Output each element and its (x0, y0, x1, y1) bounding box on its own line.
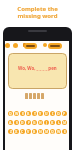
button[interactable]: Stars (43, 43, 47, 47)
staticText: H (39, 120, 42, 125)
button[interactable]: B (32, 129, 37, 134)
button[interactable]: I (50, 111, 55, 116)
button[interactable]: G (32, 120, 37, 125)
staticText: Z (10, 129, 12, 134)
button[interactable]: Q (8, 111, 13, 116)
button[interactable]: K (50, 120, 55, 125)
staticText: I (52, 111, 54, 116)
button[interactable]: Q (50, 129, 55, 134)
staticText: U (45, 111, 48, 116)
staticText: W (15, 111, 19, 116)
staticText: E (22, 111, 24, 116)
button[interactable]: D (20, 120, 25, 125)
button[interactable] (33, 93, 36, 99)
button[interactable]: M (62, 120, 67, 125)
button[interactable]: X (14, 129, 19, 134)
button[interactable]: C (20, 129, 25, 134)
button[interactable]: Back (5, 43, 10, 48)
staticText: K (51, 120, 54, 125)
button[interactable]: A (8, 120, 13, 125)
button[interactable] (41, 93, 44, 99)
button[interactable]: P (62, 111, 67, 116)
staticText: C (21, 129, 24, 134)
button[interactable]: N (38, 129, 43, 134)
button[interactable] (37, 93, 40, 99)
button[interactable]: E (62, 129, 67, 134)
staticText: E (64, 129, 66, 134)
button[interactable]: J (44, 120, 49, 125)
staticText: R (27, 111, 30, 116)
staticText: Wo, Wo, _ _ _ _ pen (18, 65, 57, 71)
staticText: G (33, 120, 36, 125)
staticText: O (57, 111, 60, 116)
staticText: V (27, 129, 30, 134)
staticText: M (45, 129, 49, 134)
button[interactable] (29, 93, 32, 99)
button[interactable]: R (26, 111, 31, 116)
staticText: Q (51, 129, 54, 134)
staticText: Complete the missing word (0, 5, 75, 20)
button[interactable]: Y (38, 111, 43, 116)
button[interactable]: L (56, 120, 61, 125)
button[interactable]: Wo, Wo, _ _ _ _ pen (8, 53, 67, 89)
staticText: J (46, 120, 48, 125)
button[interactable]: W (14, 111, 19, 116)
button[interactable] (25, 93, 28, 99)
staticText: S (16, 120, 18, 125)
staticText: Y (39, 111, 42, 116)
button[interactable]: T (32, 111, 37, 116)
button[interactable]: W (56, 129, 61, 134)
button[interactable]: F (26, 120, 31, 125)
button[interactable]: V (26, 129, 31, 134)
staticText: B (33, 129, 36, 134)
staticText: P (63, 111, 66, 116)
staticText: F (28, 120, 30, 125)
button[interactable]: S (14, 120, 19, 125)
staticText: M (63, 120, 67, 125)
staticText: D (21, 120, 24, 125)
staticText: Q (9, 111, 12, 116)
staticText: X (15, 129, 18, 134)
button[interactable]: M (44, 129, 49, 134)
staticText: W (57, 129, 61, 134)
staticText: A (9, 120, 12, 125)
staticText: N (39, 129, 42, 134)
button[interactable]: U (44, 111, 49, 116)
button[interactable]: Z (8, 129, 13, 134)
button[interactable]: E (20, 111, 25, 116)
button[interactable]: O (56, 111, 61, 116)
button[interactable]: Progress (24, 43, 37, 49)
staticText: L (58, 120, 60, 125)
staticText: T (34, 111, 36, 116)
button[interactable]: Coins (13, 43, 18, 48)
button[interactable]: Progress (48, 43, 62, 49)
button[interactable]: H (38, 120, 43, 125)
